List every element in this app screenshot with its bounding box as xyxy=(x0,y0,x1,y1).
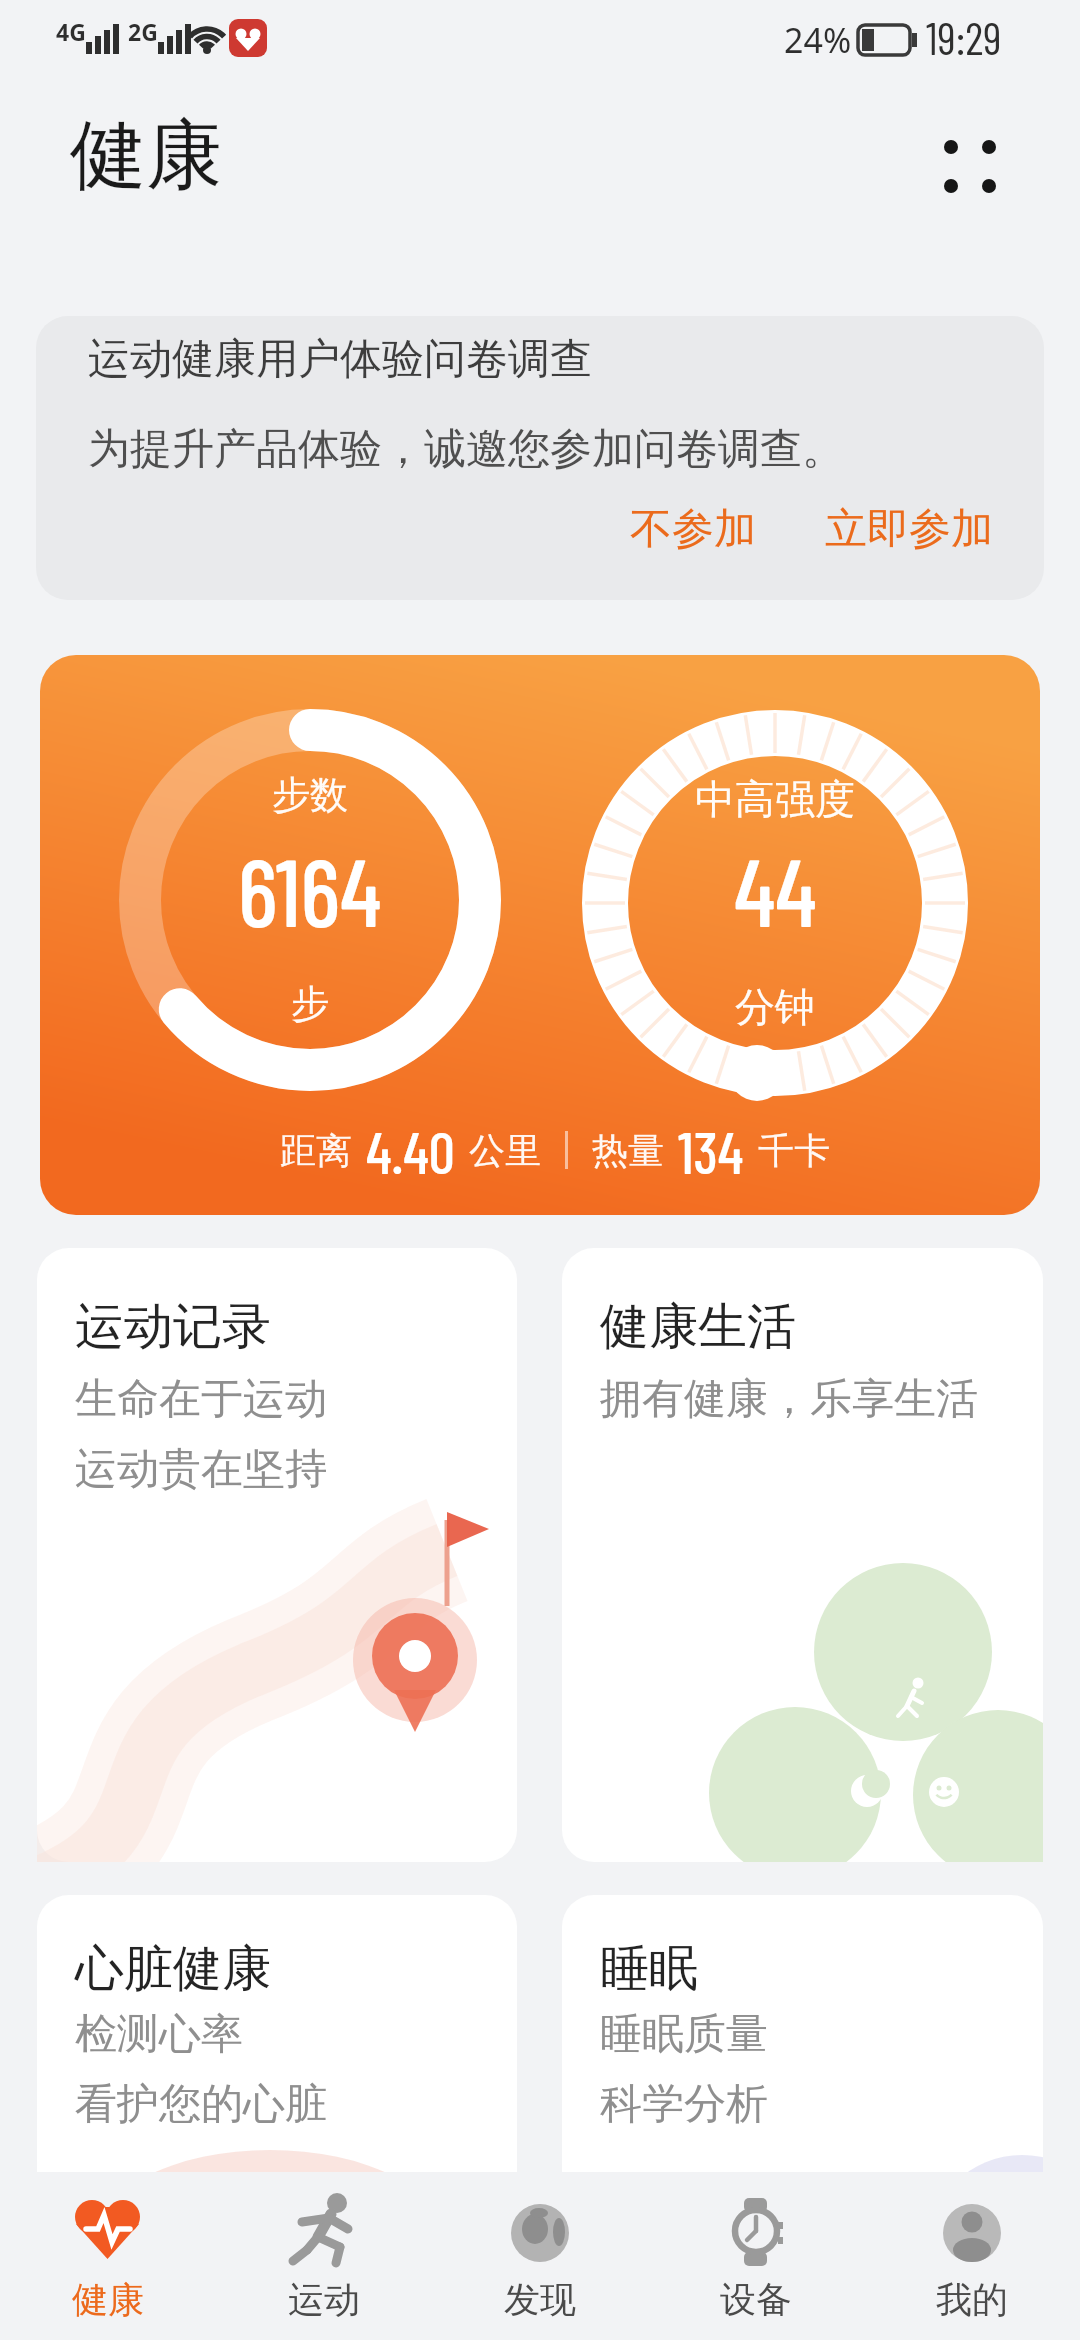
staticText: 立即参加 xyxy=(825,503,993,556)
staticText: 运动 xyxy=(288,2277,360,2322)
staticText: 拥有健康，乐享生活 xyxy=(600,1373,978,1426)
staticText: 公里 xyxy=(469,1128,541,1173)
staticText: 分钟 xyxy=(735,982,815,1032)
staticText: 2G xyxy=(128,16,158,47)
staticText: 4.40 xyxy=(366,1116,455,1184)
staticText: 健康 xyxy=(70,108,222,204)
staticText: 运动记录 xyxy=(75,1296,271,1358)
staticText: 热量 xyxy=(592,1128,664,1173)
staticText: 24% xyxy=(784,17,852,63)
staticText: 步数 xyxy=(272,771,348,819)
staticText: 运动贵在坚持 xyxy=(75,1443,327,1496)
staticText: 生命在于运动 xyxy=(75,1373,327,1426)
staticText: 运动健康用户体验问卷调查 xyxy=(88,333,592,386)
staticText: 19:29 xyxy=(926,10,1002,64)
staticText: 科学分析 xyxy=(600,2078,768,2131)
staticText: 睡眠 xyxy=(600,1938,698,2000)
staticText: 44 xyxy=(734,833,817,946)
staticText: 134 xyxy=(678,1116,744,1184)
staticText: 不参加 xyxy=(630,503,756,556)
staticText: 我的 xyxy=(936,2277,1008,2322)
staticText: 发现 xyxy=(504,2277,576,2322)
staticText: 为提升产品体验，诚邀您参加问卷调查。 xyxy=(88,423,844,476)
staticText: 睡眠质量 xyxy=(600,2008,768,2061)
staticText: 看护您的心脏 xyxy=(75,2078,327,2131)
staticText: 检测心率 xyxy=(75,2008,243,2061)
staticText: 健康生活 xyxy=(600,1296,796,1358)
staticText: 千卡 xyxy=(758,1128,830,1173)
staticText: 健康 xyxy=(72,2277,144,2322)
staticText: 距离 xyxy=(280,1128,352,1173)
staticText: 中高强度 xyxy=(695,774,855,824)
staticText: 设备 xyxy=(720,2277,792,2322)
staticText: 4G xyxy=(56,16,86,47)
staticText: 6164 xyxy=(238,833,382,946)
staticText: 步 xyxy=(291,980,329,1028)
staticText: 心脏健康 xyxy=(75,1938,271,2000)
